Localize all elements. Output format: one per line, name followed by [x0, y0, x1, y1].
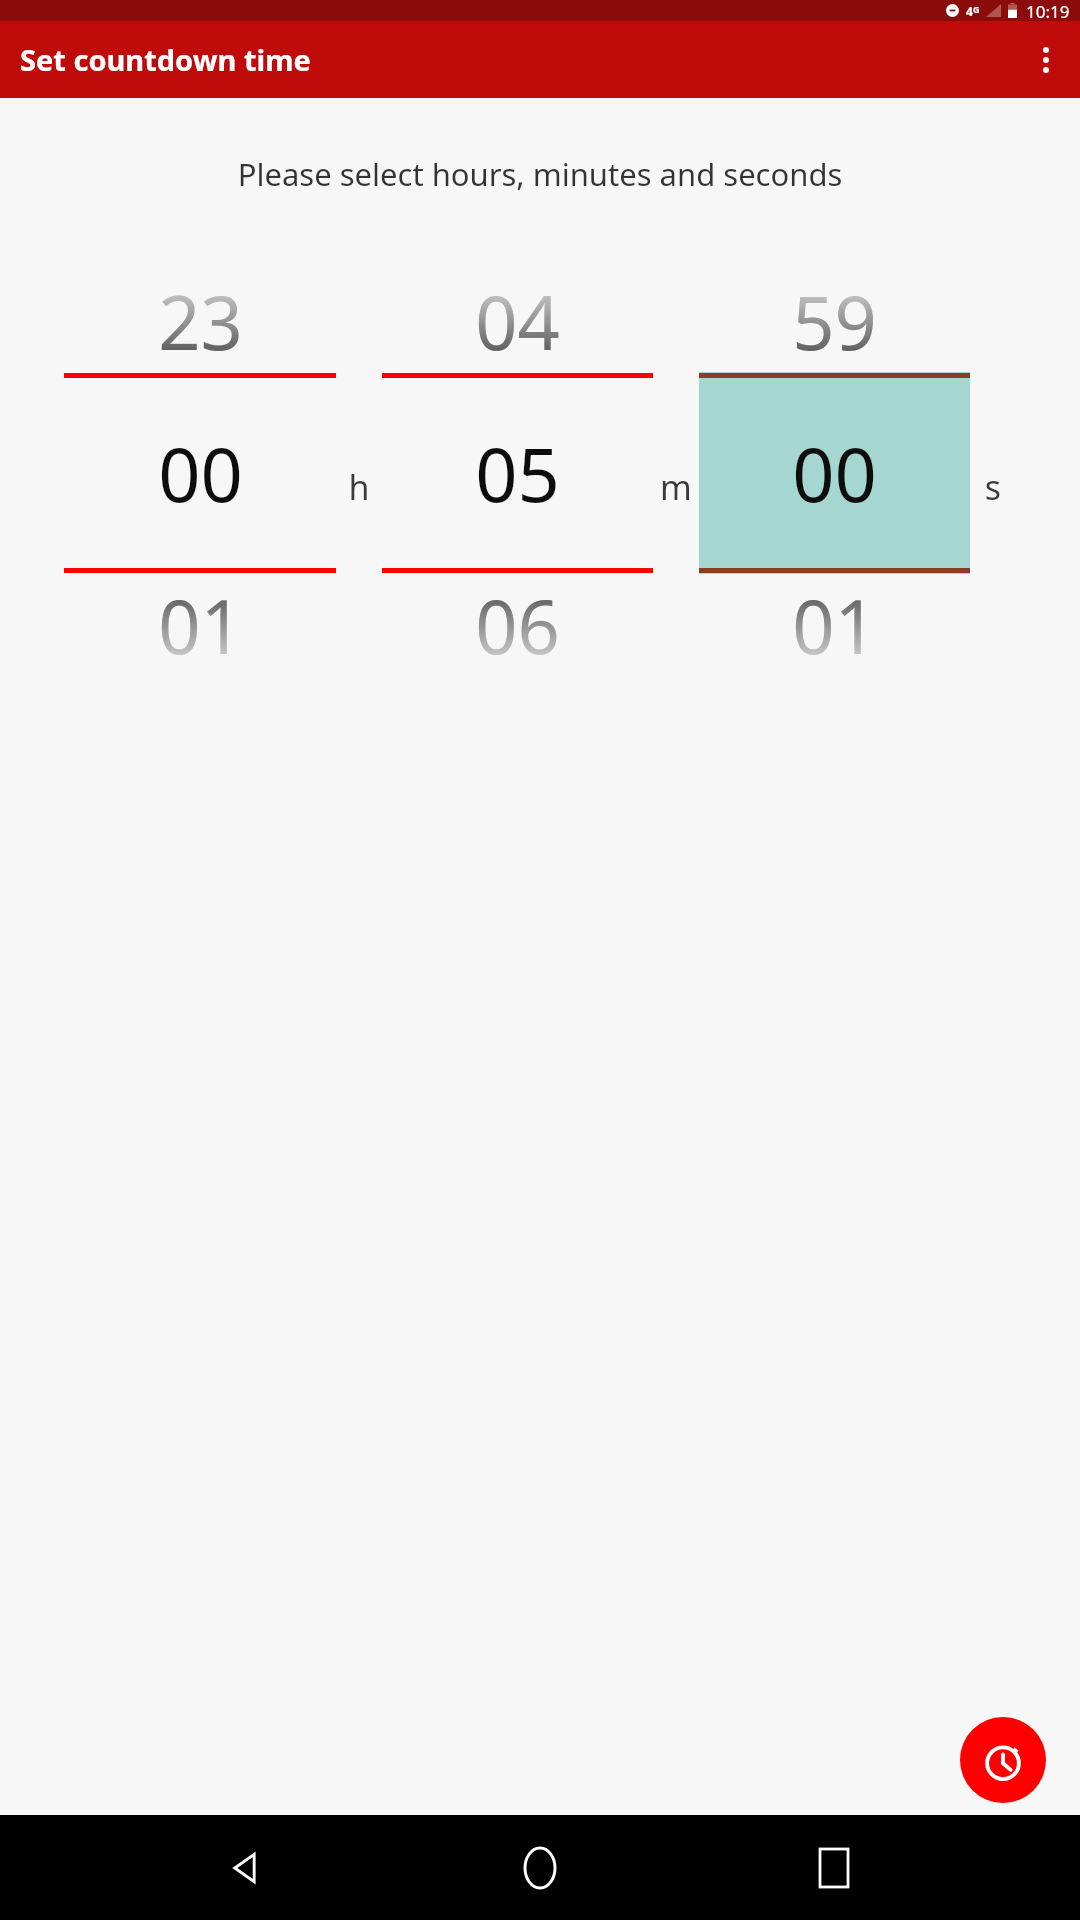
staticText: 00	[158, 423, 243, 524]
staticText: 59	[792, 271, 877, 372]
button[interactable]: Start countdown timer	[960, 1717, 1046, 1803]
button[interactable]: 59	[699, 270, 1016, 676]
staticText: 10:19	[1026, 0, 1070, 21]
button[interactable]: 04	[382, 270, 699, 676]
staticText: s	[970, 464, 1016, 510]
staticText: 06	[475, 575, 560, 676]
staticText: Set countdown time	[20, 40, 311, 79]
staticText: Please select hours, minutes and seconds	[26, 153, 1054, 195]
staticText: G	[973, 3, 980, 15]
staticText: 23	[158, 271, 243, 372]
staticText: 01	[792, 575, 877, 676]
staticText: 04	[475, 271, 560, 372]
staticText: 00	[792, 423, 877, 524]
staticText: m	[653, 464, 699, 510]
staticText: 4	[966, 3, 973, 19]
staticText: 05	[475, 423, 560, 524]
staticText: h	[336, 464, 382, 510]
button[interactable]: Back	[198, 1820, 294, 1916]
button[interactable]: 23	[64, 270, 382, 676]
button[interactable]: More options	[1022, 36, 1070, 84]
button[interactable]: Home	[492, 1820, 588, 1916]
button[interactable]: Recent apps	[786, 1820, 882, 1916]
staticText: 01	[158, 575, 243, 676]
